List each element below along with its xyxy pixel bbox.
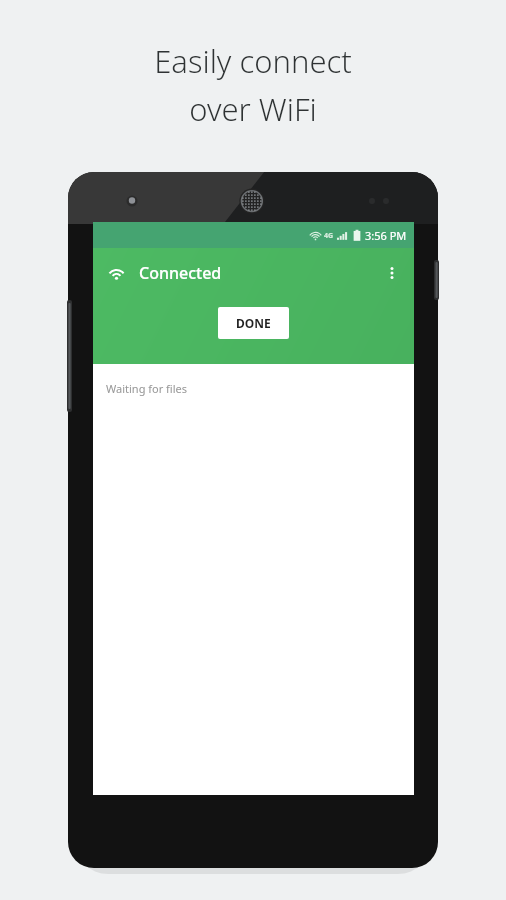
staticText: DONE (236, 315, 271, 331)
button[interactable]: DONE (218, 307, 289, 339)
staticText: over WiFi (189, 88, 317, 130)
staticText: Connected (139, 262, 222, 284)
staticText: 3:56 PM (365, 228, 407, 243)
button[interactable]: More options (376, 257, 408, 289)
staticText: Waiting for files (106, 381, 188, 396)
staticText: 4G (324, 231, 334, 241)
button[interactable]: WiFi connected (104, 261, 128, 285)
staticText: Easily connect (154, 40, 352, 82)
